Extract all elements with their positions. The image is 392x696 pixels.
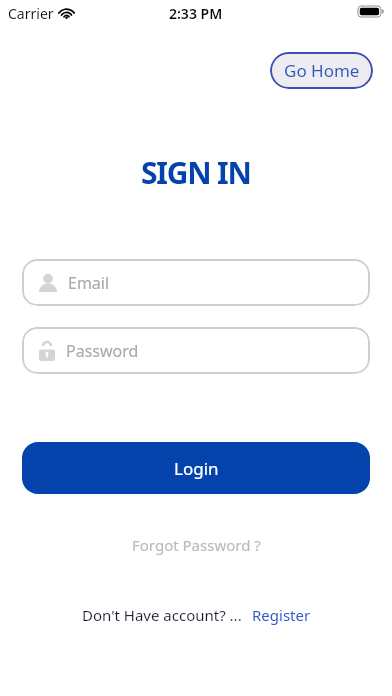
staticText: Email (68, 272, 110, 294)
staticText: Go Home (284, 59, 360, 82)
button[interactable]: Password (22, 327, 370, 374)
staticText: Password (66, 340, 139, 362)
staticText: Login (174, 457, 219, 480)
staticText: SIGN IN (141, 152, 251, 193)
staticText: Carrier (8, 4, 54, 23)
button[interactable]: Login (22, 442, 370, 494)
button[interactable]: Forgot Password ? (132, 535, 261, 555)
button[interactable]: Email (22, 259, 370, 306)
button[interactable]: Register (252, 605, 311, 625)
staticText: 2:33 PM (169, 4, 223, 23)
staticText: Don't Have account? ... (82, 605, 242, 625)
button[interactable]: Go Home (270, 52, 373, 89)
